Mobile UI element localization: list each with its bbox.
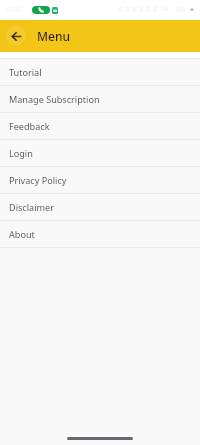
button[interactable]: Manage Subscription [0, 86, 200, 112]
staticText: Disclaimer [9, 201, 54, 213]
button[interactable]: Tutorial [0, 59, 200, 85]
staticText: Manage Subscription [9, 93, 100, 105]
staticText: Tutorial [9, 66, 42, 78]
button[interactable]: Disclaimer [0, 194, 200, 220]
staticText: Login [9, 147, 33, 159]
button[interactable]: Login [0, 140, 200, 166]
staticText: Menu [37, 28, 70, 44]
staticText: Privacy Policy [9, 174, 67, 186]
button[interactable]: Privacy Policy [0, 167, 200, 193]
button[interactable]: Back [0, 20, 31, 52]
staticText: Feedback [9, 120, 50, 132]
button[interactable]: About [0, 221, 200, 247]
button[interactable]: Feedback [0, 113, 200, 139]
staticText: About [9, 228, 35, 240]
